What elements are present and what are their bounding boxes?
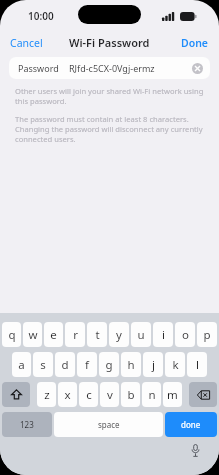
staticText: Wi-Fi Password <box>69 35 150 50</box>
staticText: g <box>105 357 113 373</box>
staticText: j <box>152 357 155 373</box>
staticText: Password <box>18 62 59 74</box>
button[interactable]: q <box>2 322 21 347</box>
button[interactable]: w <box>23 322 42 347</box>
button[interactable]: u <box>131 322 151 347</box>
button[interactable]: z <box>37 382 56 407</box>
staticText: y <box>116 327 122 343</box>
button[interactable]: o <box>175 322 195 347</box>
button[interactable]: e <box>44 322 63 347</box>
button[interactable]: Dictate <box>187 442 203 458</box>
button[interactable]: done <box>165 412 217 437</box>
button[interactable]: a <box>12 352 31 377</box>
button[interactable]: Cancel <box>0 31 53 55</box>
button[interactable]: Password <box>9 57 210 79</box>
button[interactable]: y <box>109 322 129 347</box>
button[interactable]: m <box>163 382 182 407</box>
button[interactable]: k <box>165 352 185 377</box>
button[interactable]: j <box>143 352 163 377</box>
button[interactable]: g <box>99 352 119 377</box>
staticText: d <box>61 357 69 373</box>
staticText: h <box>127 357 135 373</box>
button[interactable]: n <box>142 382 161 407</box>
staticText: Done <box>181 36 209 50</box>
button[interactable]: v <box>100 382 119 407</box>
staticText: f <box>85 357 89 373</box>
button[interactable]: space <box>54 412 163 437</box>
staticText: w <box>28 327 38 343</box>
staticText: b <box>127 387 135 403</box>
staticText: Cancel <box>10 36 43 50</box>
staticText: u <box>137 327 145 343</box>
button[interactable]: h <box>121 352 141 377</box>
staticText: space <box>98 419 120 430</box>
staticText: The password must contain at least 8 cha… <box>15 114 204 144</box>
button[interactable]: Clear text <box>192 63 203 74</box>
staticText: l <box>196 357 199 373</box>
button[interactable]: t <box>87 322 107 347</box>
button[interactable]: f <box>77 352 97 377</box>
staticText: o <box>182 327 189 343</box>
button[interactable]: x <box>58 382 77 407</box>
staticText: 123 <box>20 419 34 430</box>
staticText: s <box>40 357 46 373</box>
button[interactable]: l <box>187 352 207 377</box>
staticText: r <box>73 327 78 343</box>
button[interactable]: s <box>33 352 53 377</box>
button[interactable]: Backspace <box>189 382 217 407</box>
button[interactable]: p <box>197 322 217 347</box>
staticText: RJfd-c5CX-0Vgj-ermz <box>69 62 192 74</box>
button[interactable]: c <box>79 382 98 407</box>
staticText: e <box>50 327 57 343</box>
button[interactable]: b <box>121 382 140 407</box>
button[interactable]: d <box>55 352 75 377</box>
button[interactable]: Shift <box>2 382 30 407</box>
staticText: t <box>95 327 100 343</box>
button[interactable]: i <box>153 322 173 347</box>
staticText: c <box>86 387 92 403</box>
staticText: 10:00 <box>28 9 54 23</box>
staticText: x <box>64 387 71 403</box>
button[interactable]: Done <box>171 31 219 55</box>
button[interactable]: 123 <box>2 412 52 437</box>
button[interactable]: r <box>65 322 85 347</box>
staticText: k <box>172 357 179 373</box>
staticText: q <box>8 327 16 343</box>
staticText: m <box>167 387 178 403</box>
staticText: z <box>44 387 50 403</box>
staticText: v <box>107 387 113 403</box>
staticText: n <box>148 387 156 403</box>
staticText: p <box>203 327 211 343</box>
staticText: a <box>18 357 25 373</box>
staticText: i <box>162 327 165 343</box>
staticText: done <box>181 419 201 430</box>
staticText: Other users will join your shared Wi-Fi … <box>15 86 204 106</box>
